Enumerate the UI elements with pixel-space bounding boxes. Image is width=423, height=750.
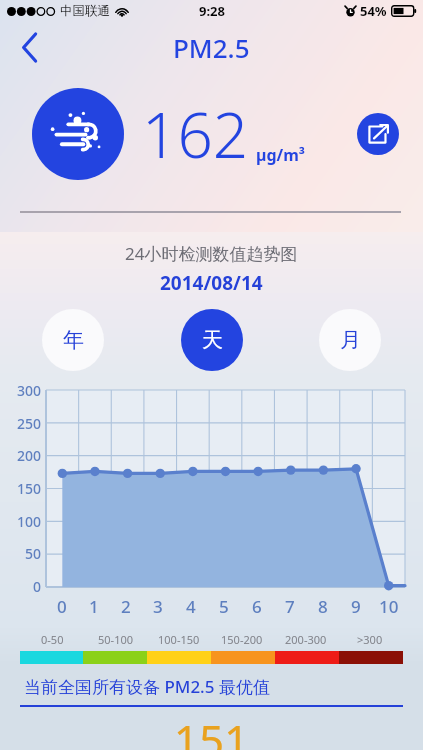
button[interactable]: 年 [42,309,104,371]
staticText: 中国联通 [60,3,110,19]
staticText: 当前全国所有设备 PM2.5 最优值 [24,675,270,698]
staticText: 151 [0,710,423,750]
staticText: µg/m³ [256,144,305,166]
staticText: 天 [202,327,223,353]
staticText: 0 [33,577,42,596]
staticText: 54% [360,2,387,20]
staticText: 9 [351,595,361,618]
staticText: 10 [379,595,399,618]
staticText: 162 [142,92,249,176]
staticText: 200 [17,446,42,465]
staticText: 24小时检测数值趋势图 [125,242,298,265]
staticText: 3 [153,595,163,618]
button[interactable]: 天 [181,309,243,371]
staticText: 100-150 [158,632,200,647]
staticText: 9:28 [199,2,225,20]
staticText: 2 [121,595,131,618]
button[interactable]: Back [8,25,52,69]
staticText: 50 [25,544,42,563]
staticText: 0 [57,595,67,618]
staticText: 月 [340,327,361,353]
staticText: 2014/08/14 [160,270,263,296]
staticText: 300 [17,381,42,400]
staticText: 6 [252,595,262,618]
staticText: 150 [17,479,42,498]
staticText: 4 [186,595,196,618]
staticText: 250 [17,414,42,433]
staticText: 1 [89,595,99,618]
staticText: 0-50 [41,632,64,647]
staticText: 7 [285,595,295,618]
button[interactable]: 月 [319,309,381,371]
staticText: >300 [357,632,383,647]
button[interactable]: Share [357,113,399,155]
staticText: 8 [318,595,328,618]
staticText: 5 [219,595,229,618]
staticText: 年 [63,327,84,353]
staticText: 100 [17,512,42,531]
staticText: 50-100 [98,632,134,647]
staticText: 150-200 [221,632,263,647]
staticText: 200-300 [285,632,327,647]
staticText: PM2.5 [173,30,250,65]
